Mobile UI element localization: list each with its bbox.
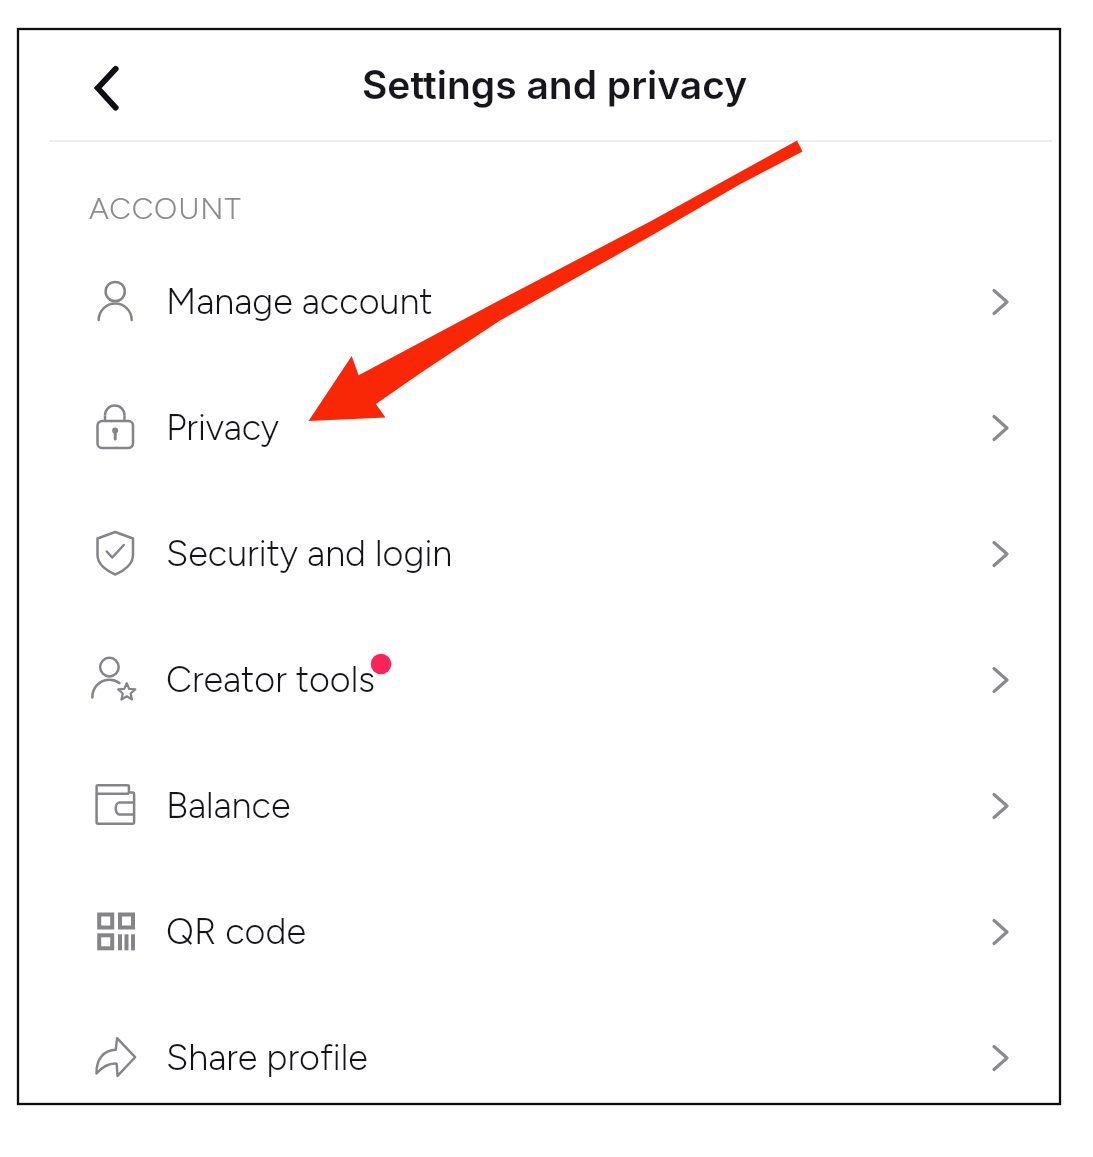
- staticText: Settings and privacy: [362, 61, 748, 108]
- staticText: Creator tools: [166, 658, 376, 701]
- staticText: QR code: [166, 910, 306, 953]
- button[interactable]: Share profile: [17, 995, 1061, 1121]
- button[interactable]: Creator tools: [17, 617, 1061, 743]
- button[interactable]: Balance: [17, 743, 1061, 869]
- button[interactable]: Security and login: [17, 491, 1061, 617]
- staticText: Privacy: [166, 406, 280, 449]
- staticText: Balance: [166, 784, 291, 827]
- staticText: Security and login: [166, 532, 453, 575]
- staticText: Share profile: [166, 1036, 368, 1079]
- button[interactable]: Manage account: [17, 239, 1061, 365]
- staticText: ACCOUNT: [89, 190, 242, 226]
- button[interactable]: QR code: [17, 869, 1061, 995]
- button[interactable]: Back: [81, 52, 137, 108]
- button[interactable]: Privacy: [17, 365, 1061, 491]
- staticText: Manage account: [166, 280, 433, 323]
